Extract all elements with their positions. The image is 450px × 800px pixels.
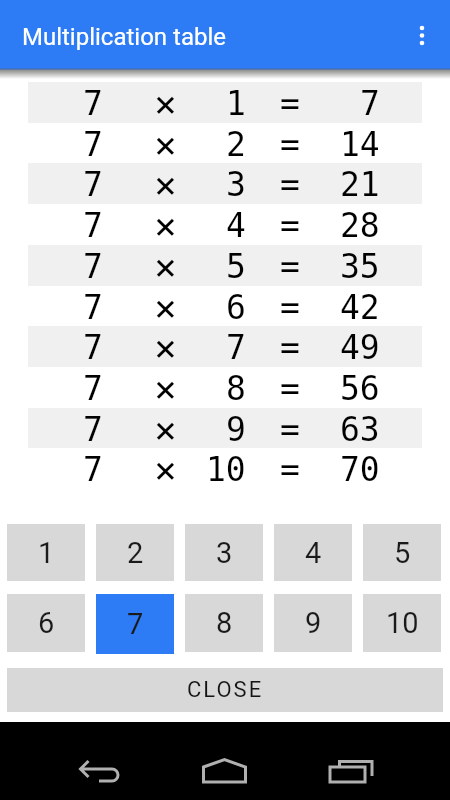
staticText: × — [154, 123, 177, 164]
staticText: 56 — [340, 369, 380, 407]
staticText: 6 — [38, 606, 55, 640]
staticText: 49 — [340, 328, 380, 366]
button[interactable]: 9 — [274, 594, 352, 652]
staticText: 5 — [394, 536, 411, 570]
staticText: 7 — [83, 328, 103, 366]
staticText: × — [154, 408, 177, 449]
staticText: 7 — [83, 247, 103, 285]
staticText: 8 — [226, 369, 246, 407]
button[interactable]: 7 — [28, 286, 422, 327]
button[interactable]: 7 — [28, 245, 422, 286]
staticText: = — [280, 206, 300, 244]
staticText: 2 — [127, 536, 144, 570]
button[interactable] — [150, 722, 300, 800]
staticText: × — [154, 245, 177, 286]
staticText: CLOSE — [187, 677, 264, 703]
staticText: × — [154, 163, 177, 204]
staticText: 1 — [226, 84, 246, 122]
button[interactable] — [404, 17, 440, 53]
button[interactable]: 2 — [96, 524, 174, 581]
staticText: 9 — [305, 606, 322, 640]
staticText: = — [280, 369, 300, 407]
staticText: 4 — [226, 206, 246, 244]
staticText: 14 — [340, 125, 380, 163]
staticText: 9 — [226, 410, 246, 448]
button[interactable]: 7 — [28, 82, 422, 123]
staticText: 7 — [83, 125, 103, 163]
staticText: × — [154, 326, 177, 367]
staticText: 3 — [226, 165, 246, 203]
staticText: 1 — [38, 536, 55, 570]
staticText: 3 — [216, 536, 233, 570]
staticText: 70 — [340, 450, 380, 488]
button[interactable]: 4 — [274, 524, 352, 581]
button[interactable]: 7 — [28, 326, 422, 367]
button[interactable]: 10 — [363, 594, 441, 652]
staticText: × — [154, 286, 177, 327]
staticText: 7 — [226, 328, 246, 366]
staticText: 7 — [83, 450, 103, 488]
staticText: 63 — [340, 410, 380, 448]
staticText: × — [154, 367, 177, 408]
staticText: = — [280, 450, 300, 488]
staticText: 7 — [83, 84, 103, 122]
staticText: 10 — [386, 606, 419, 640]
staticText: 7 — [83, 410, 103, 448]
staticText: = — [280, 328, 300, 366]
button[interactable]: 3 — [185, 524, 263, 581]
staticText: 4 — [305, 536, 322, 570]
staticText: 7 — [83, 206, 103, 244]
staticText: × — [154, 204, 177, 245]
staticText: 5 — [226, 247, 246, 285]
staticText: = — [280, 410, 300, 448]
staticText: 28 — [340, 206, 380, 244]
button[interactable]: 7 — [28, 448, 422, 489]
button[interactable]: 7 — [28, 367, 422, 408]
button[interactable] — [0, 722, 150, 800]
staticText: 6 — [226, 288, 246, 326]
staticText: = — [280, 288, 300, 326]
staticText: 7 — [83, 165, 103, 203]
staticText: = — [280, 84, 300, 122]
button[interactable]: 1 — [7, 524, 85, 581]
staticText: 35 — [340, 247, 380, 285]
staticText: 7 — [127, 607, 144, 641]
staticText: 7 — [83, 288, 103, 326]
button[interactable]: 6 — [7, 594, 85, 652]
staticText: = — [280, 247, 300, 285]
staticText: × — [154, 448, 177, 489]
button[interactable]: CLOSE — [7, 668, 443, 712]
staticText: = — [280, 165, 300, 203]
staticText: 7 — [360, 84, 380, 122]
staticText: 2 — [226, 125, 246, 163]
staticText: 8 — [216, 606, 233, 640]
button[interactable] — [300, 722, 450, 800]
button[interactable]: 7 — [28, 123, 422, 164]
staticText: 42 — [340, 288, 380, 326]
staticText: Multiplication table — [22, 23, 226, 51]
button[interactable]: 7 — [96, 594, 174, 654]
staticText: = — [280, 125, 300, 163]
button[interactable]: 7 — [28, 163, 422, 204]
staticText: 21 — [340, 165, 380, 203]
button[interactable]: 8 — [185, 594, 263, 652]
staticText: 10 — [206, 450, 246, 488]
button[interactable]: 5 — [363, 524, 441, 581]
staticText: × — [154, 82, 177, 123]
button[interactable]: 7 — [28, 408, 422, 449]
button[interactable]: 7 — [28, 204, 422, 245]
staticText: 7 — [83, 369, 103, 407]
